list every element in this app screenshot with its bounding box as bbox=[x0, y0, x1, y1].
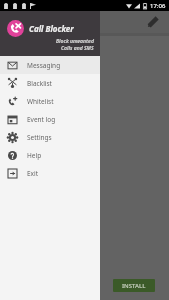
staticText: Call Blocker bbox=[29, 23, 74, 34]
staticText: Block unwanted bbox=[56, 38, 94, 45]
button[interactable]: Blacklist bbox=[0, 74, 100, 92]
staticText: INSTALL bbox=[122, 282, 146, 290]
button[interactable]: Settings bbox=[0, 128, 100, 146]
staticText: Blacklist bbox=[27, 79, 52, 88]
staticText: Settings bbox=[27, 133, 52, 142]
staticText: Whitelist bbox=[27, 97, 54, 106]
button[interactable]: Messaging bbox=[0, 56, 100, 74]
staticText: 17:06 bbox=[150, 2, 166, 10]
staticText: Messaging bbox=[27, 61, 61, 70]
staticText: Help bbox=[27, 151, 42, 160]
button[interactable]: INSTALL bbox=[113, 279, 155, 292]
button[interactable]: Event log bbox=[0, 110, 100, 128]
staticText: Exit bbox=[27, 169, 39, 178]
button[interactable]: Edit bbox=[145, 14, 161, 30]
button[interactable]: Exit bbox=[0, 164, 100, 182]
staticText: Calls and SMS bbox=[61, 45, 94, 52]
staticText: Event log bbox=[27, 115, 56, 124]
button[interactable]: Help bbox=[0, 146, 100, 164]
button[interactable]: Whitelist bbox=[0, 92, 100, 110]
